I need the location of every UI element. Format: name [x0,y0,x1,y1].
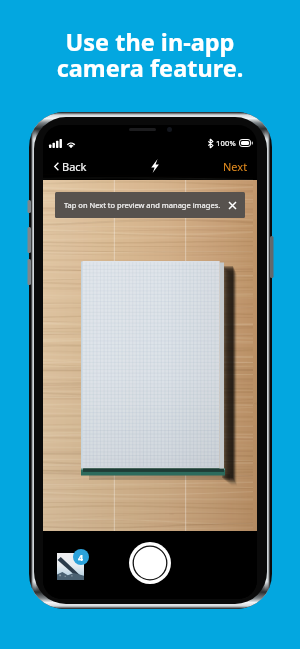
staticText: Next [223,159,248,174]
button[interactable]: Back [43,154,95,179]
button[interactable]: Take photo [129,542,171,584]
button[interactable]: Captured images [57,553,84,580]
staticText: 4 [78,551,84,563]
other: Dismiss tip [229,202,236,209]
staticText: Use the in-app camera feature. [0,26,300,84]
staticText: 100% [216,138,236,148]
button[interactable]: Toggle flash [142,153,168,179]
staticText: Back [62,159,87,174]
button[interactable]: Tap on Next to preview and manage images… [55,192,245,218]
staticText: Tap on Next to preview and manage images… [64,200,221,210]
button[interactable]: Next [215,154,257,179]
